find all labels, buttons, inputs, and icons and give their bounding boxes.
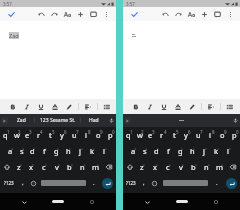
button[interactable]: Expand toolbar (0, 114, 9, 127)
button[interactable]: Home (172, 193, 192, 210)
button[interactable]: a (5, 143, 16, 159)
button[interactable]: Undo (159, 8, 172, 21)
button[interactable]: Emoji (149, 175, 160, 191)
button[interactable]: j (74, 143, 86, 159)
button[interactable]: j (198, 143, 210, 159)
button[interactable]: Add (198, 8, 211, 21)
button[interactable]: Backspace (226, 159, 240, 175)
button[interactable]: o (216, 127, 228, 143)
button[interactable]: More options (224, 8, 237, 21)
button[interactable]: p (104, 127, 116, 143)
button[interactable]: Recents (85, 195, 99, 209)
button[interactable]: Text colour (171, 99, 185, 114)
button[interactable]: Home (48, 193, 68, 210)
button[interactable]: Voice input (106, 114, 116, 127)
button[interactable]: t (168, 127, 180, 143)
button[interactable]: h (186, 143, 198, 159)
button[interactable]: l (98, 143, 110, 159)
button[interactable]: w (134, 127, 145, 143)
button[interactable]: i (204, 127, 216, 143)
button[interactable]: ?123 (0, 175, 17, 191)
button[interactable]: Bold (6, 99, 20, 114)
button[interactable]: Italic (143, 99, 157, 114)
button[interactable]: f (38, 143, 50, 159)
button[interactable]: x (25, 159, 37, 175)
button[interactable]: Add (74, 8, 87, 21)
button[interactable]: k (86, 143, 98, 159)
button[interactable]: w (11, 127, 22, 143)
button[interactable]: Zad (9, 114, 34, 127)
button[interactable]: Space (41, 180, 86, 186)
button[interactable]: r (156, 127, 168, 143)
button[interactable]: t (44, 127, 56, 143)
button[interactable]: a (128, 143, 139, 159)
button[interactable]: Comment (211, 8, 224, 21)
button[interactable]: b (63, 159, 76, 175)
button[interactable]: e (145, 127, 156, 143)
button[interactable]: Text format (185, 8, 198, 21)
button[interactable]: Italic (20, 99, 34, 114)
button[interactable]: . (211, 175, 222, 191)
button[interactable]: Undo (35, 8, 48, 21)
button[interactable]: Shift (123, 159, 136, 175)
button[interactable]: Done (5, 8, 17, 20)
button[interactable]: Expand toolbar (123, 114, 132, 127)
button[interactable]: r (33, 127, 44, 143)
button[interactable]: s (139, 143, 150, 159)
button[interactable]: Enter (226, 178, 237, 189)
button[interactable]: Space (163, 180, 208, 186)
button[interactable]: g (50, 143, 62, 159)
button[interactable]: Text format (61, 8, 74, 21)
button[interactable]: Underline (34, 99, 48, 114)
button[interactable]: p (228, 127, 240, 143)
button[interactable]: Alignment (204, 99, 218, 114)
button[interactable]: m (89, 159, 102, 175)
button[interactable]: Alignment (81, 99, 95, 114)
button[interactable]: Text colour (48, 99, 62, 114)
button[interactable]: Backspace (102, 159, 116, 175)
button[interactable]: Shift (0, 159, 13, 175)
button[interactable]: c (161, 159, 174, 175)
button[interactable]: Had (81, 114, 106, 127)
button[interactable]: u (192, 127, 204, 143)
button[interactable]: c (37, 159, 50, 175)
button[interactable]: h (62, 143, 74, 159)
button[interactable]: ?123 (123, 175, 138, 191)
button[interactable]: . (89, 175, 99, 191)
button[interactable]: d (150, 143, 162, 159)
button[interactable]: Enter (102, 178, 113, 189)
button[interactable]: 123 Sesame St. (35, 114, 80, 127)
button[interactable]: e (22, 127, 33, 143)
button[interactable]: v (174, 159, 187, 175)
button[interactable]: d (27, 143, 38, 159)
button[interactable]: Redo (48, 8, 61, 21)
button[interactable]: Emoji (28, 175, 38, 191)
button[interactable]: z (136, 159, 148, 175)
button[interactable]: u (68, 127, 80, 143)
button[interactable]: x (148, 159, 161, 175)
button[interactable]: More options (100, 8, 113, 21)
button[interactable]: Recents (209, 195, 223, 209)
button[interactable]: Voice input (230, 114, 240, 127)
button[interactable]: Back (140, 195, 154, 209)
button[interactable]: y (180, 127, 192, 143)
button[interactable]: Bold (129, 99, 143, 114)
button[interactable]: q (123, 127, 134, 143)
button[interactable]: Back (17, 195, 31, 209)
button[interactable]: n (76, 159, 89, 175)
button[interactable]: v (50, 159, 63, 175)
button[interactable]: Highlight (185, 99, 199, 114)
button[interactable]: Underline (157, 99, 171, 114)
button[interactable]: q (0, 127, 11, 143)
button[interactable]: List (100, 99, 114, 114)
button[interactable]: Comment (87, 8, 100, 21)
button[interactable]: g (174, 143, 186, 159)
button[interactable]: y (56, 127, 68, 143)
button[interactable]: n (200, 159, 213, 175)
button[interactable]: o (92, 127, 104, 143)
button[interactable]: s (16, 143, 27, 159)
button[interactable]: z (13, 159, 25, 175)
button[interactable]: , (138, 175, 149, 191)
button[interactable]: l (222, 143, 234, 159)
button[interactable]: f (162, 143, 174, 159)
